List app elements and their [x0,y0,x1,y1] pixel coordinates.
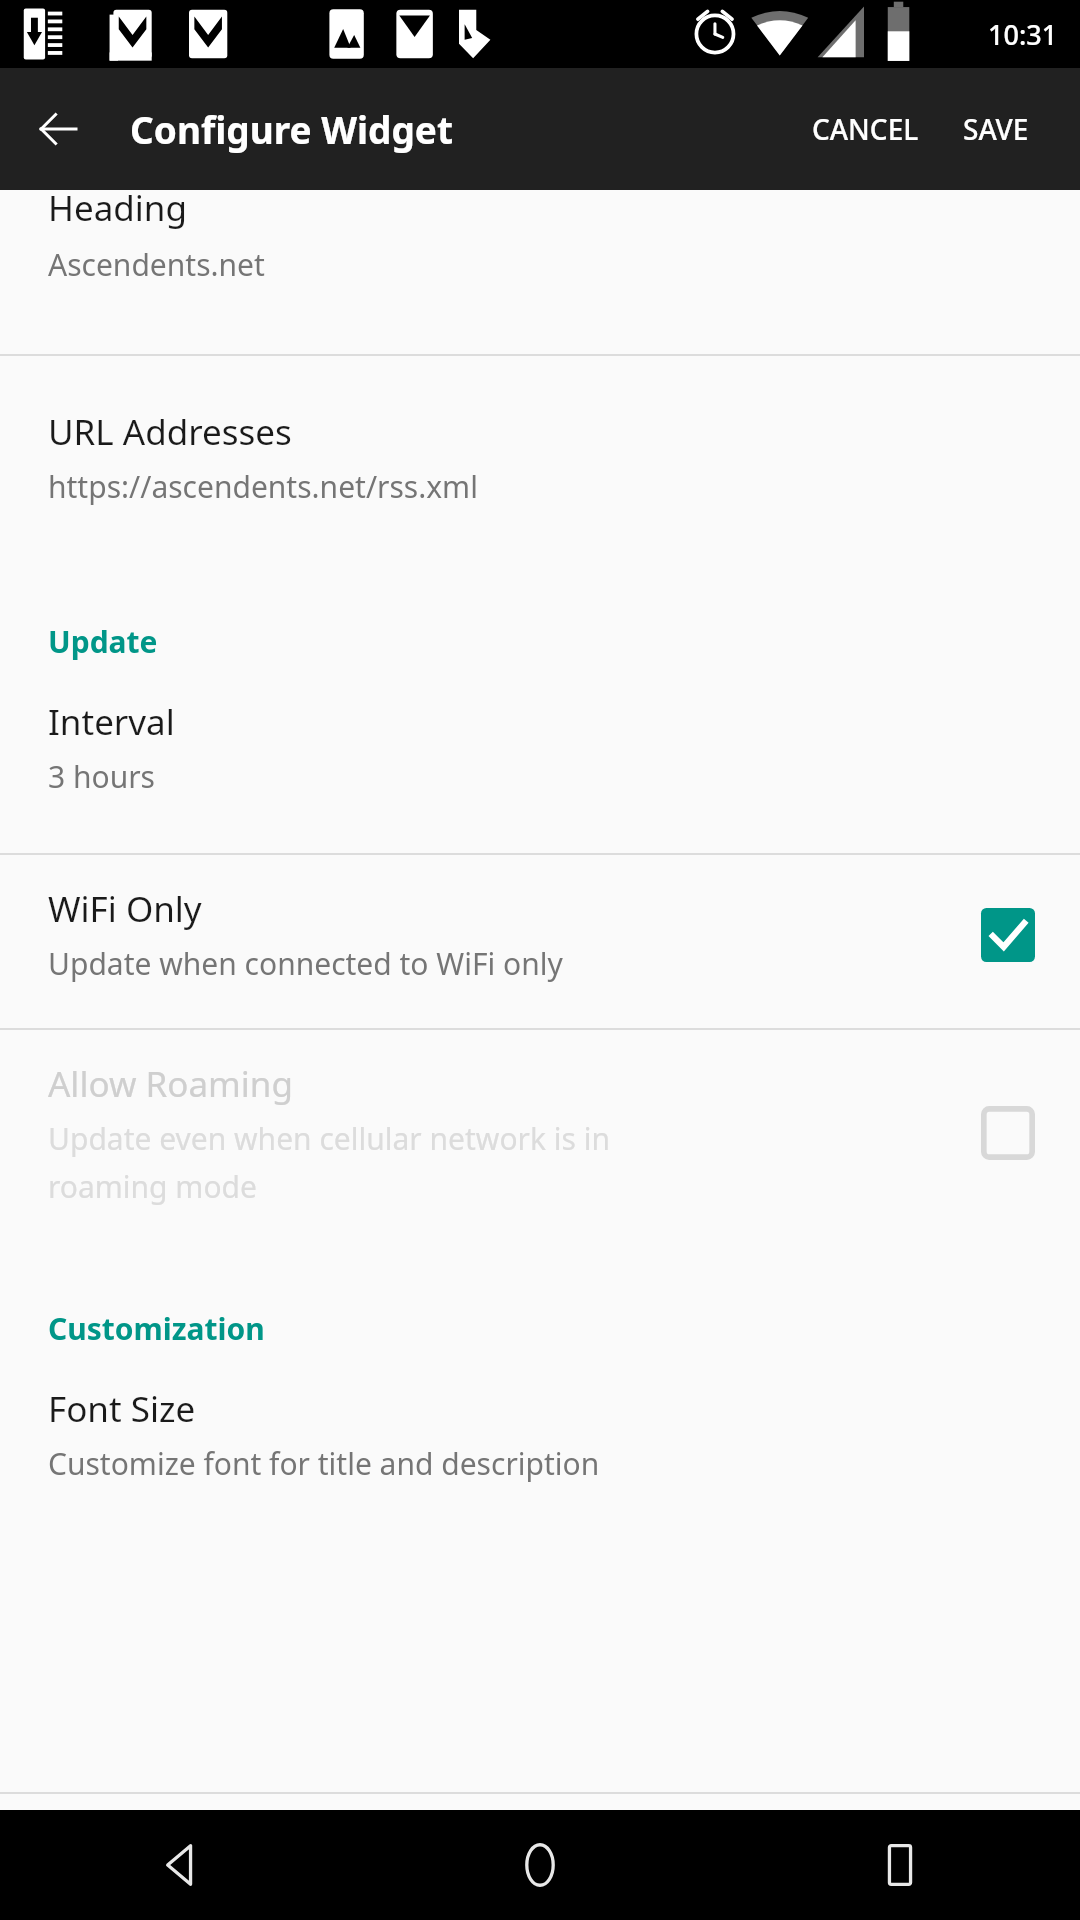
staticText: Update when connected to WiFi only [48,943,563,984]
button[interactable]: Recent apps [845,1810,955,1920]
staticText: CANCEL [812,110,919,148]
button[interactable]: Checked [980,907,1036,963]
staticText: URL Addresses [48,408,292,456]
staticText: Allow Roaming [48,1060,294,1108]
staticText: Font Size [48,1385,196,1433]
button[interactable]: Heading [0,190,1080,354]
button[interactable]: CANCEL [798,96,933,162]
button[interactable]: SAVE [949,96,1043,162]
staticText: 3 hours [48,756,155,797]
staticText: Customization [48,1308,265,1349]
staticText: SAVE [963,110,1029,148]
staticText: Update even when cellular network is in … [48,1118,610,1206]
button[interactable]: Home [485,1810,595,1920]
staticText: Configure Widget [130,104,453,154]
staticText: Interval [48,698,175,746]
button[interactable]: Allow Roaming [0,1030,1080,1250]
button[interactable]: Interval [0,672,1080,853]
staticText: https://ascendents.net/rss.xml [48,466,478,507]
button[interactable]: Unchecked [980,1105,1036,1161]
button[interactable]: Back [22,93,94,165]
button[interactable]: Font Size [0,1359,1080,1524]
button[interactable]: URL Addresses [0,356,1080,563]
button[interactable]: WiFi Only [0,855,1080,1028]
staticText: Heading [48,184,188,232]
staticText: 10:31 [988,16,1058,53]
staticText: Ascendents.net [48,244,265,285]
staticText: Customize font for title and description [48,1443,600,1484]
staticText: Update [48,621,158,662]
button[interactable]: Back [125,1810,235,1920]
staticText: WiFi Only [48,885,202,933]
